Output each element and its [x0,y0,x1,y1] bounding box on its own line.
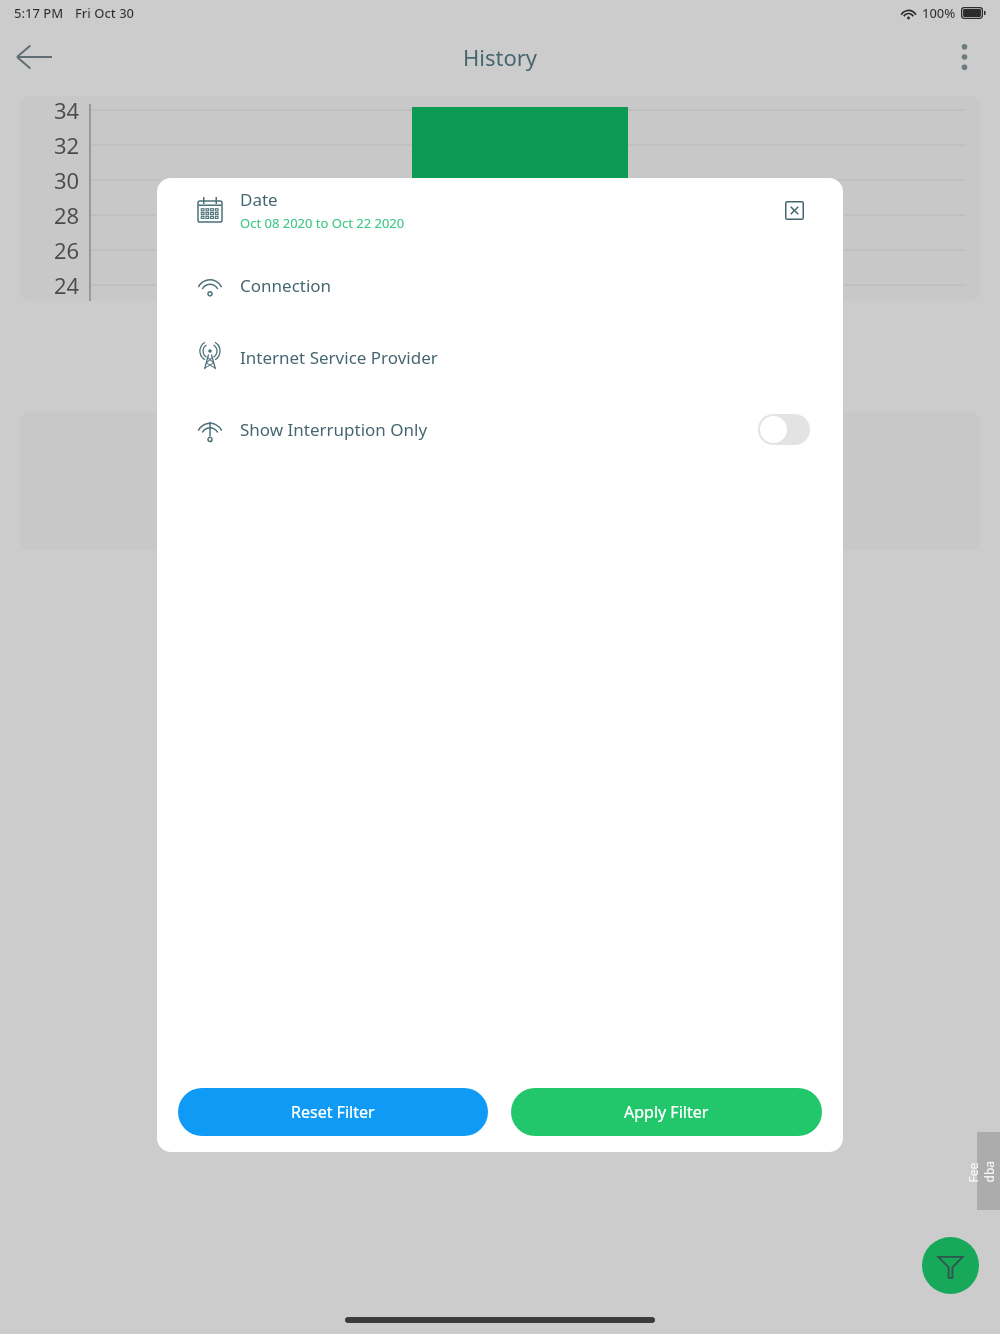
staticText: 26 [54,235,80,265]
staticText: Date [240,188,278,211]
button[interactable]: Close [779,189,827,237]
staticText: Apply Filter [624,1101,709,1123]
button[interactable]: Apply Filter [511,1088,822,1136]
staticText: 24 [54,270,80,300]
button[interactable]: Internet Service Provider [176,328,824,386]
staticText: 100% [922,4,956,22]
staticText: Internet Service Provider [240,346,438,369]
staticText: 5:17 PM [14,4,64,22]
staticText: Feedback [964,1159,1000,1182]
button[interactable]: Reset Filter [178,1088,488,1136]
staticText: 34 [54,96,80,125]
button[interactable]: Show Interruption Only [176,400,824,458]
button[interactable]: Clear date [776,192,812,228]
button[interactable]: More options [938,31,990,83]
button[interactable]: Back [8,31,60,83]
button[interactable]: Date [176,178,824,242]
staticText: Oct 08 2020 to Oct 22 2020 [240,214,405,232]
button[interactable]: Filter [922,1237,979,1294]
staticText: Fri Oct 30 [75,4,135,22]
staticText: Reset Filter [291,1101,375,1123]
staticText: Connection [240,274,332,297]
staticText: History [463,42,538,72]
staticText: 30 [54,165,80,195]
button[interactable]: Show interruption only [758,414,810,445]
staticText: 32 [54,130,80,160]
staticText: Show Interruption Only [240,418,428,441]
button[interactable]: Feedback [977,1132,1000,1210]
button[interactable]: Connection [176,256,824,314]
staticText: 28 [54,200,80,230]
